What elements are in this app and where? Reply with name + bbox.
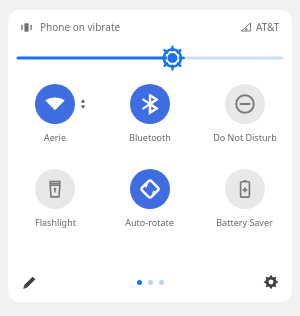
- button[interactable]: Settings: [256, 267, 286, 297]
- staticText: Phone on vibrate: [40, 20, 121, 34]
- staticText: Battery Saver: [216, 216, 273, 228]
- button[interactable]: Do Not Disturb: [197, 82, 292, 145]
- staticText: Do Not Disturb: [213, 131, 277, 143]
- button[interactable]: Auto-rotate: [102, 167, 197, 230]
- staticText: AT&T: [256, 20, 280, 34]
- staticText: Bluetooth: [129, 131, 171, 143]
- staticText: Aerie: [44, 131, 66, 143]
- button[interactable]: AT&T: [241, 20, 280, 34]
- staticText: Auto-rotate: [125, 216, 174, 228]
- button[interactable]: Aerie: [8, 82, 102, 145]
- button[interactable]: Edit tiles: [14, 267, 44, 297]
- button[interactable]: Battery Saver: [197, 167, 292, 230]
- button[interactable]: Phone on vibrate: [20, 20, 121, 34]
- staticText: Flashlight: [35, 216, 76, 228]
- button[interactable]: Flashlight: [8, 167, 102, 230]
- button[interactable]: Bluetooth: [102, 82, 197, 145]
- button[interactable]: Brightness: [18, 44, 282, 72]
